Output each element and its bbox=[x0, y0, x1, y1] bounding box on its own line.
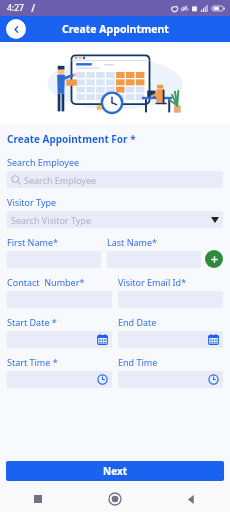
staticText: Next bbox=[103, 464, 128, 478]
staticText: End Time bbox=[118, 356, 158, 368]
staticText: Create Appointment For * bbox=[7, 132, 136, 146]
staticText: Start Date * bbox=[7, 316, 57, 328]
staticText: Create Appointment bbox=[62, 22, 169, 36]
staticText: Visitor Type bbox=[7, 196, 57, 208]
button[interactable]: Search Visitor Type bbox=[7, 211, 223, 228]
button[interactable] bbox=[7, 331, 112, 348]
staticText: 4:27 bbox=[7, 2, 24, 14]
staticText: Contact Number* bbox=[7, 276, 85, 288]
staticText: Visitor Email Id* bbox=[118, 276, 187, 288]
button[interactable]: Next bbox=[6, 461, 224, 481]
button[interactable]: Add visitor bbox=[205, 250, 223, 268]
staticText: Last Name* bbox=[107, 236, 158, 248]
button[interactable]: Search Employee bbox=[7, 171, 223, 188]
button[interactable] bbox=[7, 371, 112, 388]
staticText: Search Employee bbox=[24, 174, 97, 186]
staticText: Search Employee bbox=[7, 156, 80, 168]
button[interactable]: Recent apps bbox=[0, 486, 76, 512]
button[interactable]: Back bbox=[6, 19, 26, 39]
button[interactable]: Home bbox=[76, 486, 153, 512]
button[interactable] bbox=[118, 331, 223, 348]
staticText: First Name* bbox=[7, 236, 58, 248]
staticText: Start Time * bbox=[7, 356, 58, 368]
button[interactable] bbox=[118, 371, 223, 388]
staticText: Search Visitor Type bbox=[11, 214, 211, 226]
button[interactable]: Back bbox=[153, 486, 230, 512]
staticText: End Date bbox=[118, 316, 157, 328]
